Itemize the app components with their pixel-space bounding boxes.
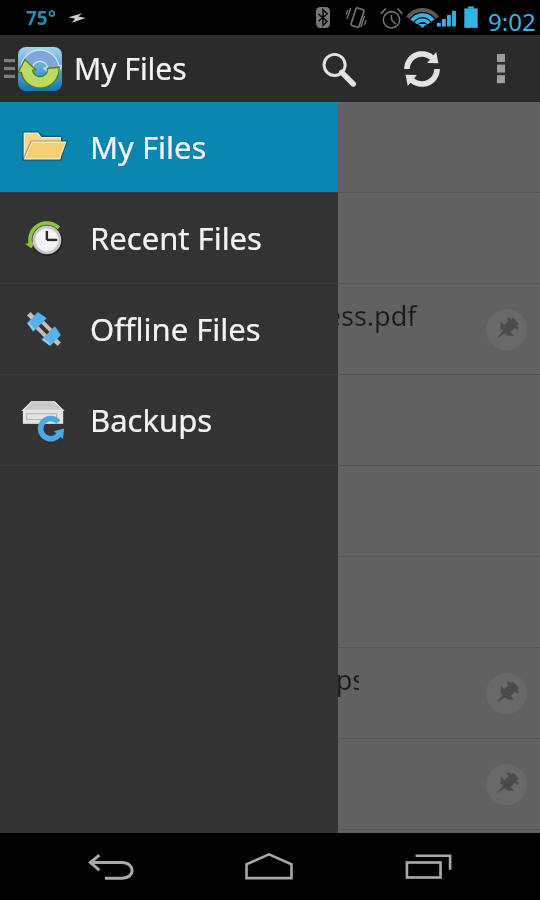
button[interactable]	[0, 466, 540, 556]
button[interactable]	[0, 102, 540, 192]
button[interactable]: My Files	[0, 102, 338, 192]
button[interactable]	[0, 193, 540, 283]
staticText: Recent Files	[90, 217, 262, 259]
button[interactable]: Offline Files	[0, 284, 338, 374]
button[interactable]: Recent Files	[0, 193, 338, 283]
staticText: 9:02	[488, 5, 536, 38]
button[interactable]: Pin	[486, 673, 527, 714]
button[interactable]	[0, 557, 540, 647]
button[interactable]: Back	[57, 833, 167, 900]
staticText: Quarterly Business.pdf	[127, 297, 417, 334]
button[interactable]: Backups	[0, 375, 338, 465]
staticText: My Files	[74, 48, 187, 89]
button[interactable]: Pin	[486, 309, 527, 350]
button[interactable]: Pin	[0, 739, 540, 829]
button[interactable]: More options	[462, 35, 540, 102]
button[interactable]	[0, 375, 540, 465]
staticText: 75°	[26, 5, 56, 31]
staticText: Offline Files	[90, 308, 261, 350]
button[interactable]: Quarterly Business.pdf	[0, 284, 540, 374]
button[interactable]: Pin	[486, 764, 527, 805]
staticText: Backups	[90, 399, 213, 441]
staticText: Website redesign mockup.psd	[0, 661, 359, 698]
button[interactable]: Search	[296, 35, 382, 102]
button[interactable]: Refresh	[382, 35, 462, 102]
button[interactable]: Home	[214, 833, 324, 900]
staticText: My Files	[90, 126, 207, 168]
button[interactable]: Recent apps	[374, 833, 484, 900]
button[interactable]: Website redesign mockup.psd	[0, 648, 540, 738]
button[interactable]: Open navigation drawer	[0, 35, 18, 102]
